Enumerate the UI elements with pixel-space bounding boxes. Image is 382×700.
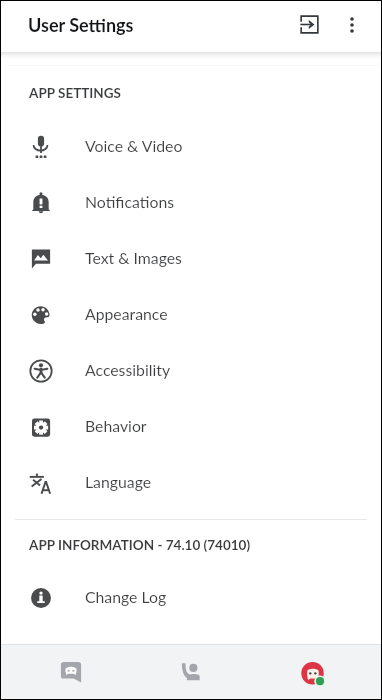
staticText: APP SETTINGS bbox=[29, 85, 121, 101]
button[interactable]: Profile bbox=[251, 644, 371, 699]
button[interactable]: Language bbox=[1, 455, 381, 511]
button[interactable]: Appearance bbox=[1, 287, 381, 343]
button[interactable]: Accessibility bbox=[1, 343, 381, 399]
staticText: Voice & Video bbox=[85, 136, 183, 155]
button[interactable]: Notifications bbox=[1, 175, 381, 231]
button[interactable]: Behavior bbox=[1, 399, 381, 455]
staticText: Accessibility bbox=[85, 360, 171, 379]
button[interactable]: Chats bbox=[11, 644, 131, 699]
staticText: Behavior bbox=[85, 416, 147, 435]
staticText: User Settings bbox=[28, 14, 134, 36]
button[interactable]: Support bbox=[131, 644, 251, 699]
staticText: Language bbox=[85, 472, 152, 491]
button[interactable]: Text & Images bbox=[1, 231, 381, 287]
button[interactable]: Change Log bbox=[1, 570, 381, 626]
button[interactable]: More options bbox=[335, 7, 375, 47]
button[interactable]: Log out bbox=[289, 4, 335, 50]
staticText: APP INFORMATION - 74.10 (74010) bbox=[29, 537, 251, 553]
button[interactable]: Voice & Video bbox=[1, 119, 381, 175]
staticText: Text & Images bbox=[85, 248, 182, 267]
staticText: Appearance bbox=[85, 304, 168, 323]
staticText: Change Log bbox=[85, 587, 167, 606]
staticText: Notifications bbox=[85, 192, 175, 211]
